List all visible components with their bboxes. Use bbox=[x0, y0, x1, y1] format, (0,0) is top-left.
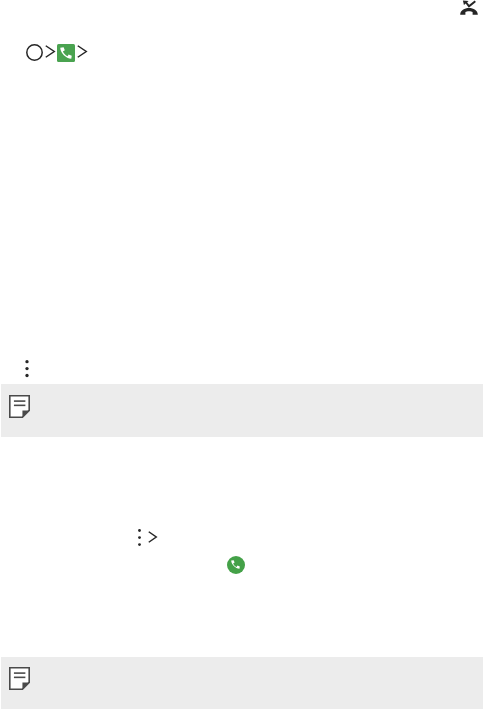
button[interactable]: More options bbox=[135, 526, 144, 548]
button[interactable]: Call bbox=[227, 556, 245, 574]
button[interactable]: More options bbox=[22, 355, 32, 381]
button[interactable]: Phone app bbox=[57, 44, 75, 62]
button[interactable]: Home bbox=[26, 44, 43, 61]
button[interactable]: Missed call bbox=[460, 0, 478, 15]
